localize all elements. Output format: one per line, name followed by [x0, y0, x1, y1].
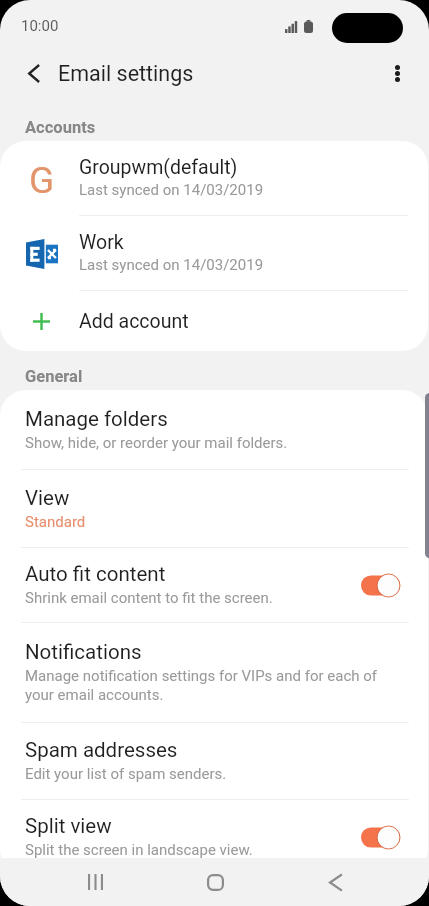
button[interactable]: View — [0, 470, 428, 548]
staticText: Auto fit content — [25, 562, 166, 586]
staticText: G — [29, 159, 55, 199]
button[interactable]: More options — [373, 49, 421, 97]
button[interactable]: Auto fit content — [0, 548, 428, 623]
staticText: Manage notification settings for VIPs an… — [25, 667, 377, 704]
button[interactable]: Split view — [0, 800, 428, 858]
button[interactable]: Recent apps — [65, 858, 125, 906]
button[interactable]: Home — [185, 858, 245, 906]
staticText: Standard — [25, 513, 86, 531]
button[interactable]: Spam addresses — [0, 723, 428, 800]
staticText: Last synced on 14/03/2019 — [79, 181, 264, 199]
staticText: Email settings — [58, 61, 194, 86]
staticText: Edit your list of spam senders. — [25, 765, 227, 783]
button[interactable]: Back — [305, 858, 365, 906]
button[interactable]: Add account — [0, 291, 428, 351]
staticText: 10:00 — [21, 17, 59, 35]
staticText: Spam addresses — [25, 738, 178, 762]
staticText: Split view — [25, 814, 112, 838]
staticText: Split the screen in landscape view. — [25, 841, 253, 858]
button[interactable]: Notifications — [0, 623, 428, 723]
staticText: Work — [79, 231, 124, 254]
staticText: Notifications — [25, 640, 142, 664]
button[interactable]: Back — [9, 49, 57, 97]
staticText: Shrink email content to fit the screen. — [25, 589, 273, 607]
button[interactable] — [361, 826, 400, 849]
button[interactable]: G — [0, 141, 428, 216]
button[interactable]: Manage folders — [0, 390, 428, 470]
staticText: General — [25, 367, 83, 386]
button[interactable]: Work — [0, 216, 428, 291]
staticText: Last synced on 14/03/2019 — [79, 256, 264, 274]
staticText: View — [25, 486, 70, 510]
staticText: Add account — [79, 310, 189, 333]
staticText: Groupwm(default) — [79, 156, 238, 179]
staticText: Show, hide, or reorder your mail folders… — [25, 434, 288, 452]
staticText: Accounts — [25, 118, 96, 137]
staticText: Manage folders — [25, 407, 168, 431]
button[interactable] — [361, 574, 400, 597]
